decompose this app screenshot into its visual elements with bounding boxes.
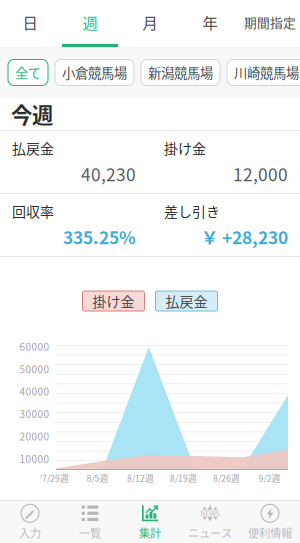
staticText: 掛け金	[92, 291, 134, 311]
button[interactable]: 入力	[0, 501, 60, 543]
button[interactable]: 全て	[8, 59, 48, 85]
button[interactable]: 便利情報	[240, 501, 300, 543]
staticText: 新潟競馬場	[148, 63, 213, 82]
staticText: 期間指定	[244, 13, 296, 31]
staticText: ￥ +28,230	[201, 224, 288, 249]
staticText: 30000	[19, 406, 49, 421]
button[interactable]: 日	[0, 0, 60, 47]
button[interactable]: 集計	[120, 501, 180, 543]
staticText: 40000	[19, 384, 49, 398]
button[interactable]: 払戻金	[155, 291, 217, 311]
staticText: 入力	[19, 524, 41, 541]
button[interactable]: 週	[60, 0, 120, 47]
staticText: 60000	[19, 339, 49, 354]
staticText: 20000	[19, 429, 49, 443]
staticText: '7/29週	[40, 472, 69, 484]
staticText: NEWS	[200, 508, 219, 519]
staticText: 差し引き	[164, 201, 220, 221]
staticText: 8/26週	[213, 472, 240, 484]
staticText: 一覧	[79, 524, 101, 541]
staticText: 40,230	[81, 161, 136, 186]
staticText: 8/19週	[170, 472, 197, 484]
staticText: 便利情報	[248, 524, 292, 541]
button[interactable]: 年	[180, 0, 240, 47]
staticText: 月	[142, 11, 157, 33]
staticText: ニュース	[188, 524, 232, 541]
staticText: 今週	[11, 99, 53, 129]
staticText: 小倉競馬場	[62, 63, 127, 82]
staticText: 全て	[15, 63, 41, 82]
staticText: 集計	[139, 524, 161, 541]
staticText: 9/2週	[258, 472, 280, 484]
button[interactable]: 掛け金	[82, 291, 144, 311]
staticText: 12,000	[233, 161, 288, 186]
button[interactable]: 月	[120, 0, 180, 47]
button[interactable]: NEWS	[180, 501, 240, 543]
button[interactable]: 小倉競馬場	[55, 59, 134, 85]
button[interactable]: 新潟競馬場	[141, 59, 220, 85]
staticText: 払戻金	[12, 138, 54, 158]
button[interactable]: 一覧	[60, 501, 120, 543]
staticText: 日	[22, 11, 37, 33]
button[interactable]: 期間指定	[240, 0, 300, 47]
staticText: 川崎競馬場	[234, 63, 299, 82]
staticText: 50000	[19, 361, 49, 376]
staticText: 8/5週	[86, 472, 108, 484]
staticText: 掛け金	[164, 138, 206, 158]
staticText: 回収率	[12, 201, 54, 221]
staticText: 払戻金	[165, 291, 207, 311]
staticText: 週	[82, 11, 97, 33]
staticText: 335.25%	[63, 224, 136, 249]
staticText: 年	[202, 11, 217, 33]
button[interactable]: 川崎競馬場	[227, 59, 300, 85]
staticText: 8/12週	[127, 472, 154, 484]
staticText: 10000	[19, 451, 49, 466]
